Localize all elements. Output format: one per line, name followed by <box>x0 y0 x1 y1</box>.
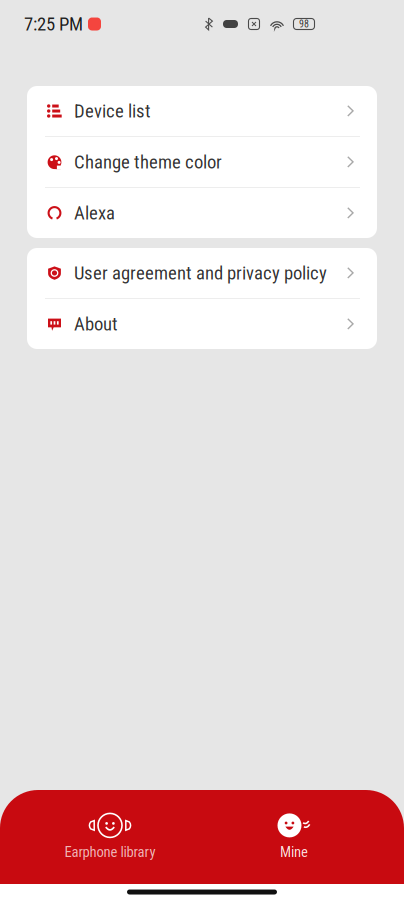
button[interactable]: User agreement and privacy policy <box>27 248 377 298</box>
button[interactable]: Mine <box>202 812 404 862</box>
staticText: Alexa <box>74 202 115 224</box>
staticText: 7:25 PM <box>24 13 83 35</box>
button[interactable]: Alexa <box>27 188 377 238</box>
staticText: Earphone library <box>64 843 155 861</box>
button[interactable]: Earphone library <box>0 812 202 862</box>
staticText: Change theme color <box>74 151 222 173</box>
button[interactable]: Change theme color <box>27 137 377 187</box>
staticText: 98 <box>299 18 309 30</box>
staticText: User agreement and privacy policy <box>74 262 327 284</box>
button[interactable]: About <box>27 299 377 349</box>
staticText: Device list <box>74 100 151 122</box>
staticText: Mine <box>280 843 308 861</box>
button[interactable]: Device list <box>27 86 377 136</box>
staticText: About <box>74 313 118 335</box>
